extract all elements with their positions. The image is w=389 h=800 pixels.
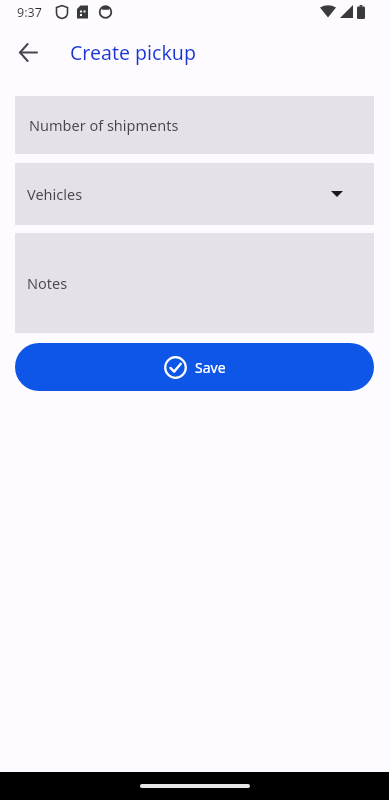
staticText: 9:37 <box>17 4 42 21</box>
button[interactable]: Notes <box>15 233 374 333</box>
button[interactable]: Number of shipments <box>15 96 374 154</box>
button[interactable]: Save <box>15 343 374 391</box>
staticText: Notes <box>27 273 68 293</box>
staticText: Number of shipments <box>29 115 179 135</box>
button[interactable]: Vehicles <box>15 163 374 225</box>
staticText: Vehicles <box>27 184 83 204</box>
staticText: Create pickup <box>70 39 196 66</box>
button[interactable] <box>4 28 52 76</box>
staticText: Save <box>195 358 226 377</box>
